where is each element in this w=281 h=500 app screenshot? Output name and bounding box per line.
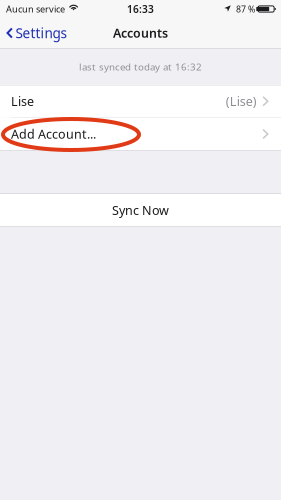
staticText: Add Account... (11, 125, 96, 143)
button[interactable]: Settings (0, 18, 75, 48)
staticText: Sync Now (112, 202, 169, 219)
staticText: 87 % (236, 3, 255, 15)
staticText: 16:33 (127, 2, 154, 16)
button[interactable]: Add Account... (0, 117, 281, 150)
staticText: Accounts (113, 25, 168, 41)
staticText: Settings (15, 24, 67, 42)
staticText: Lise (11, 93, 34, 110)
staticText: last synced today at 16:32 (79, 60, 202, 73)
button[interactable]: Sync Now (0, 194, 281, 226)
button[interactable]: Lise (0, 85, 281, 117)
staticText: (Lise) (226, 93, 257, 110)
staticText: Aucun service (6, 3, 65, 15)
